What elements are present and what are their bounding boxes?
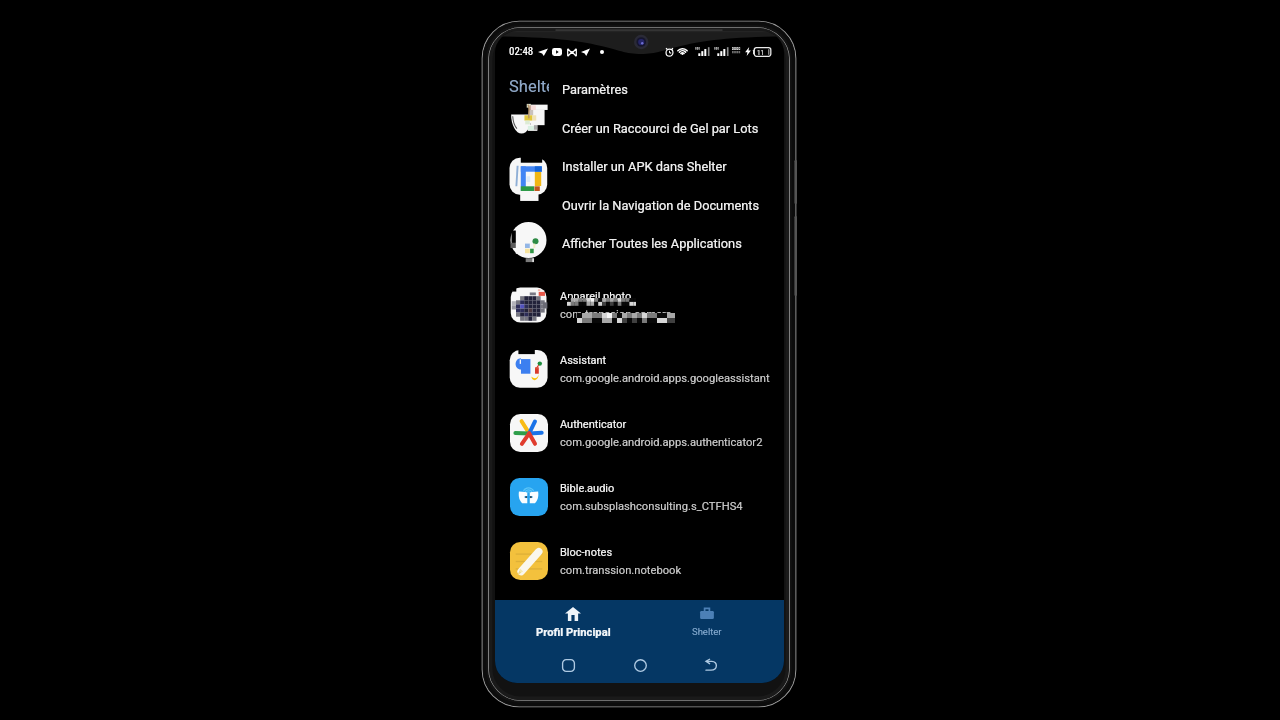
button[interactable]: Paramètres (549, 70, 784, 109)
button[interactable] (495, 81, 784, 145)
staticText: Profil Principal (536, 626, 611, 639)
staticText: com.subsplashconsulting.s_CTFHS4 (560, 500, 743, 513)
button[interactable]: Authenticator (495, 401, 784, 465)
button[interactable]: Ouvrir la Navigation de Documents (549, 186, 784, 225)
staticText: 02:48 (509, 45, 534, 58)
button[interactable]: Bible.audio (495, 465, 784, 529)
button[interactable]: Créer un Raccourci de Gel par Lots (549, 109, 784, 148)
staticText: com.transsion.notebook (560, 564, 682, 577)
button[interactable]: Shelter (667, 600, 747, 648)
staticText: Authenticator (560, 418, 627, 431)
button[interactable] (495, 209, 784, 273)
staticText: com.google.android.apps.authenticator2 (560, 436, 763, 449)
staticText: Paramètres (562, 82, 628, 97)
button[interactable]: Back (687, 648, 735, 683)
staticText: com.google.android.apps.googleassistant (560, 372, 770, 385)
staticText: Assistant (560, 354, 607, 367)
button[interactable]: Home (616, 648, 664, 683)
staticText: Afficher Toutes les Applications (562, 236, 742, 251)
button[interactable]: Appareil photo (495, 273, 784, 337)
staticText: Créer un Raccourci de Gel par Lots (562, 121, 759, 136)
button[interactable]: Installer un APK dans Shelter (549, 147, 784, 186)
staticText: 11 (757, 48, 765, 56)
button[interactable]: Recent apps (544, 648, 592, 683)
staticText: com.transsion.camera (560, 308, 672, 321)
button[interactable]: Bloc-notes (495, 529, 784, 593)
staticText: Installer un APK dans Shelter (562, 159, 727, 174)
button[interactable]: Assistant (495, 337, 784, 401)
button[interactable]: Afficher Toutes les Applications (549, 224, 784, 263)
staticText: Shelter (509, 77, 561, 96)
button[interactable]: Profil Principal (517, 600, 629, 648)
staticText: Bloc-notes (560, 546, 613, 559)
button[interactable] (495, 145, 784, 209)
staticText: Bible.audio (560, 482, 615, 495)
staticText: Shelter (692, 626, 722, 637)
staticText: Ouvrir la Navigation de Documents (562, 198, 760, 213)
staticText: Appareil photo (560, 290, 632, 303)
